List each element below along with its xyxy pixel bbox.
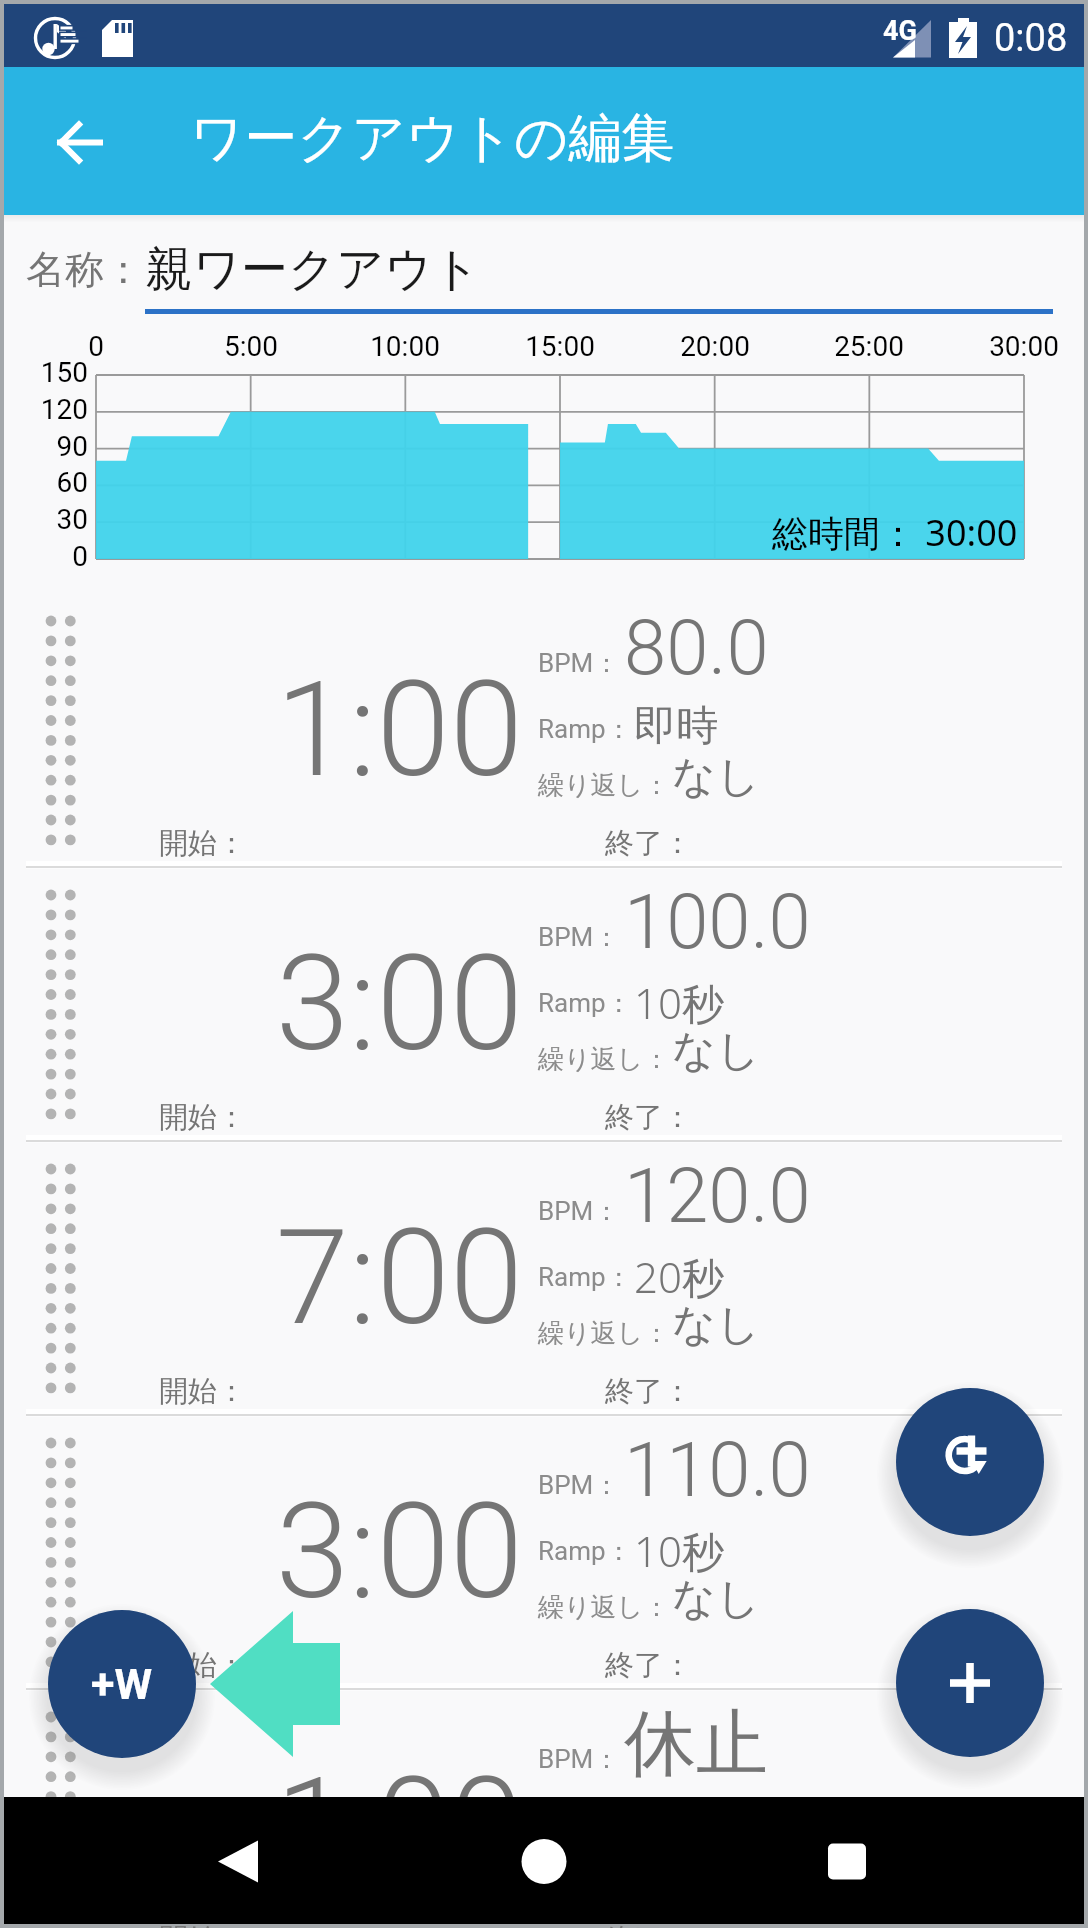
staticText: BPM： (538, 647, 620, 680)
staticText: 総時間： 30:00 (772, 508, 1018, 557)
staticText: BPM： (538, 1469, 620, 1502)
staticText: Ramp： (538, 1261, 632, 1294)
staticText: Ramp： (538, 1535, 632, 1568)
staticText: 終了： (605, 1647, 692, 1684)
staticText: 0 (4, 540, 88, 573)
staticText: 5:00 (161, 330, 341, 363)
staticText: 1:00 (163, 653, 523, 808)
staticText: Ramp： (538, 713, 632, 746)
staticText: +W (91, 1659, 153, 1709)
staticText: 100.0 (624, 877, 811, 966)
staticText: 繰り返し： (538, 1591, 670, 1624)
staticText: 20秒 (634, 1248, 724, 1305)
staticText: 即時 (634, 1796, 718, 1849)
staticText: 繰り返し： (538, 1043, 670, 1076)
staticText: 110.0 (624, 1425, 811, 1514)
staticText: 3:00 (163, 927, 523, 1082)
button[interactable]: Back (178, 1797, 298, 1924)
staticText: 0:08 (994, 16, 1068, 61)
staticText: 3:00 (163, 1475, 523, 1630)
staticText: 10:00 (315, 330, 495, 363)
staticText: ワークアウトの編集 (190, 105, 675, 172)
staticText: 終了： (605, 825, 692, 862)
staticText: BPM： (538, 1743, 620, 1776)
staticText: 80.0 (624, 603, 769, 692)
button[interactable]: Add (896, 1609, 1044, 1757)
button[interactable]: 3:00 (4, 1415, 1084, 1689)
button[interactable]: 1:00 (4, 1689, 1084, 1928)
staticText: 25:00 (779, 330, 959, 363)
button[interactable]: 7:00 (4, 1141, 1084, 1415)
staticText: 開始： (159, 825, 246, 862)
staticText: なし (672, 1572, 761, 1626)
staticText: なし (672, 750, 761, 804)
staticText: 120 (4, 393, 88, 426)
staticText: 開始： (159, 1373, 246, 1410)
staticText: 4G (883, 15, 917, 47)
staticText: 120.0 (624, 1151, 811, 1240)
staticText: 90 (4, 430, 88, 463)
staticText: 60 (4, 466, 88, 499)
staticText: 親ワークアウト (146, 240, 481, 299)
button[interactable]: Add repeat (896, 1388, 1044, 1536)
staticText: なし (672, 1298, 761, 1352)
staticText: 名称： (26, 245, 143, 294)
staticText: 15:00 (470, 330, 650, 363)
staticText: 開始： (159, 1921, 246, 1928)
staticText: 7:00 (163, 1201, 523, 1356)
staticText: 即時 (634, 700, 718, 753)
staticText: 10秒 (634, 974, 724, 1031)
staticText: 終了： (605, 1921, 692, 1928)
staticText: 終了： (605, 1373, 692, 1410)
button[interactable]: 1:00 (4, 593, 1084, 867)
staticText: 30:00 (934, 330, 1088, 363)
staticText: なし (672, 1024, 761, 1078)
button[interactable]: Back (34, 92, 130, 188)
staticText: 0 (6, 330, 186, 363)
staticText: 開始： (159, 1647, 246, 1684)
staticText: 繰り返し： (538, 1317, 670, 1350)
staticText: BPM： (538, 921, 620, 954)
staticText: 開始： (159, 1099, 246, 1136)
staticText: 20:00 (625, 330, 805, 363)
button[interactable]: 名称： (4, 215, 1084, 325)
button[interactable]: Recents (787, 1797, 907, 1924)
staticText: 30 (4, 503, 88, 536)
staticText: 150 (4, 356, 88, 389)
staticText: 休止 (624, 1699, 768, 1790)
button[interactable]: 3:00 (4, 867, 1084, 1141)
staticText: Ramp： (538, 987, 632, 1020)
staticText: BPM： (538, 1195, 620, 1228)
staticText: Ramp： (538, 1809, 632, 1842)
staticText: 繰り返し： (538, 1865, 670, 1898)
staticText: 1:00 (163, 1749, 523, 1904)
staticText: 10秒 (634, 1522, 724, 1579)
button[interactable]: Home (484, 1797, 604, 1924)
staticText: 終了： (605, 1099, 692, 1136)
staticText: 繰り返し： (538, 769, 670, 802)
button[interactable]: +W (48, 1610, 196, 1758)
